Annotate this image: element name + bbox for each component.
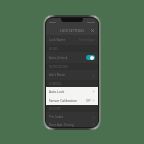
- staticText: SECURITY: [49, 107, 61, 110]
- button[interactable]: Sensor Calibration: [46, 96, 98, 105]
- staticText: Pin Codes: [49, 115, 64, 119]
- button[interactable]: Alert Mode: [46, 70, 98, 80]
- staticText: NOTIFICATIONS: [49, 65, 68, 68]
- button[interactable]: Auto-Unlock: [46, 52, 98, 63]
- button[interactable]: Pin Codes: [46, 112, 98, 122]
- staticText: Front Door: [79, 38, 95, 42]
- button[interactable]: Lock Name: [46, 35, 98, 45]
- staticText: Door Ajar Timing: [49, 123, 74, 127]
- button[interactable]: Door Ajar Timing: [46, 122, 98, 127]
- staticText: Alert Mode: [49, 73, 66, 77]
- staticText: Auto-Lock: [49, 90, 65, 94]
- staticText: Auto-Unlock: [49, 56, 68, 60]
- staticText: Lock Name: [49, 38, 66, 42]
- staticText: Sensor Calibration: [49, 99, 77, 103]
- button[interactable]: Auto-Lock: [46, 87, 98, 96]
- staticText: ACCESS: [49, 47, 58, 50]
- button[interactable]: Auto-Unlock toggle: [86, 55, 95, 60]
- staticText: SCHEDULE: [49, 82, 62, 85]
- button[interactable]: Close: [90, 28, 95, 33]
- staticText: LOCK SETTINGS: [60, 29, 85, 33]
- staticText: OFF: [86, 99, 91, 103]
